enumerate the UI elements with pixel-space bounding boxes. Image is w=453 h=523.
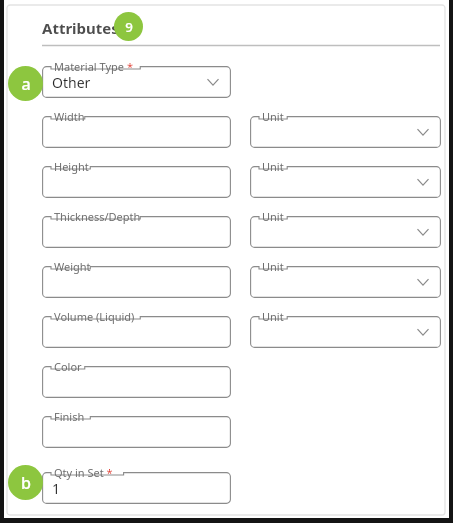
- staticText: 1: [52, 479, 61, 498]
- staticText: Weight: [54, 259, 91, 274]
- button[interactable]: Unit: [250, 316, 441, 348]
- staticText: a: [21, 73, 31, 95]
- staticText: Width: [54, 109, 85, 124]
- button[interactable]: Unit: [250, 266, 441, 298]
- staticText: Finish: [54, 409, 85, 424]
- staticText: Color: [54, 359, 82, 374]
- button[interactable]: Thickness/Depth: [42, 216, 231, 248]
- staticText: Unit: [262, 259, 284, 274]
- button[interactable]: Unit: [250, 116, 441, 148]
- staticText: Unit: [262, 109, 284, 124]
- staticText: Unit: [262, 309, 284, 324]
- button[interactable]: Qty in Set: [42, 472, 231, 504]
- button[interactable]: Unit: [250, 216, 441, 248]
- staticText: Unit: [262, 159, 284, 174]
- button[interactable]: Color: [42, 366, 231, 398]
- button[interactable]: Weight: [42, 266, 231, 298]
- button[interactable]: Width: [42, 116, 231, 148]
- staticText: Qty in Set *: [54, 465, 113, 480]
- staticText: b: [21, 472, 31, 494]
- staticText: Volume (Liquid): [54, 309, 135, 324]
- button[interactable]: Height: [42, 166, 231, 198]
- button[interactable]: Material Type: [42, 66, 231, 98]
- staticText: Thickness/Depth: [54, 209, 141, 224]
- button[interactable]: Badge b: [8, 465, 43, 500]
- button[interactable]: Finish: [42, 416, 231, 448]
- button[interactable]: Badge a: [8, 66, 43, 101]
- staticText: 9: [125, 18, 133, 36]
- button[interactable]: Unit: [250, 166, 441, 198]
- staticText: Height: [54, 159, 89, 174]
- staticText: Unit: [262, 209, 284, 224]
- button[interactable]: Badge 9: [114, 12, 143, 41]
- button[interactable]: Volume (Liquid): [42, 316, 231, 348]
- staticText: Other: [52, 73, 91, 92]
- staticText: Attributes: [42, 18, 119, 38]
- staticText: Material Type *: [54, 59, 133, 74]
